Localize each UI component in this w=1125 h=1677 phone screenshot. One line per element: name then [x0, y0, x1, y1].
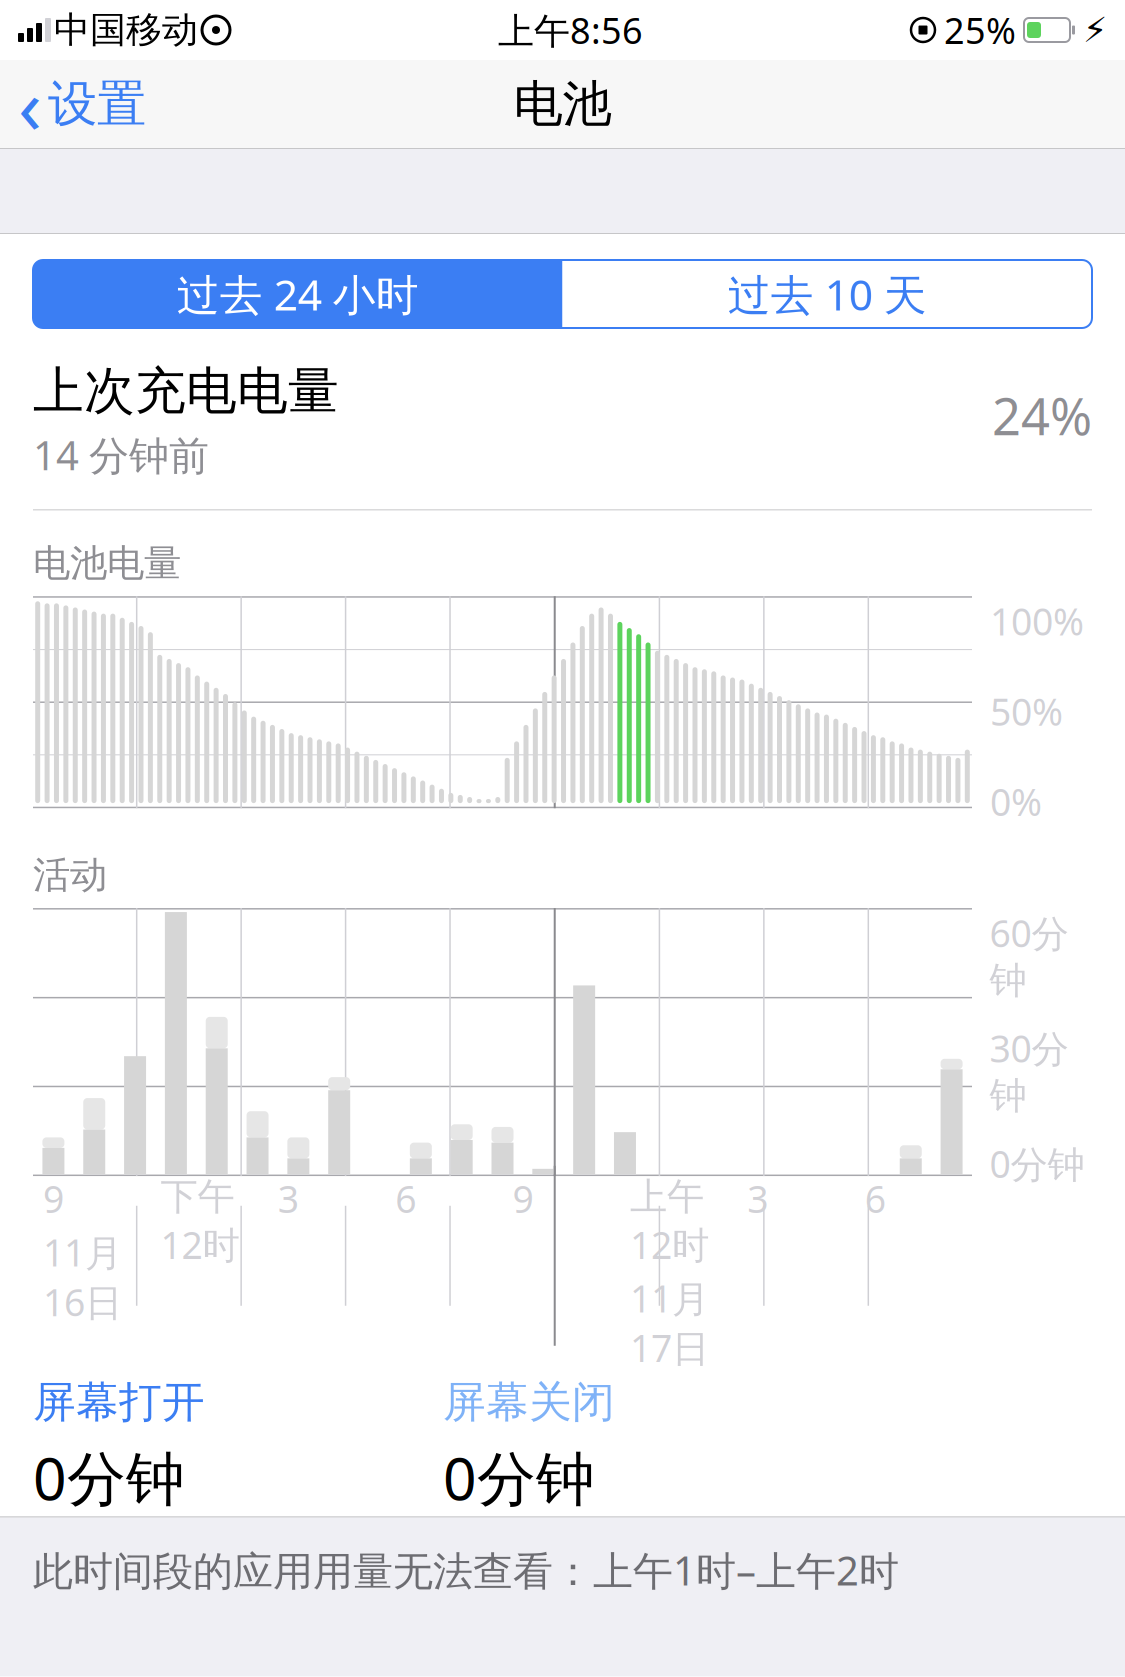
staticText: 过去 24 小时 — [177, 266, 419, 322]
staticText: 0分钟 — [989, 1139, 1084, 1188]
staticText: 设置 — [48, 74, 146, 134]
staticText: 上午 12时 — [630, 1174, 709, 1269]
staticText: 11月17日 — [630, 1273, 709, 1372]
staticText: 0% — [990, 777, 1042, 826]
staticText: 此时间段的应用用量无法查看：上午1时–上午2时 — [33, 1543, 899, 1596]
staticText: 50% — [990, 686, 1063, 736]
staticText: 中国移动 — [54, 8, 198, 52]
staticText: 3 — [747, 1174, 768, 1223]
staticText: 6 — [395, 1174, 416, 1223]
staticText: 9 — [512, 1174, 533, 1223]
staticText: 3 — [278, 1174, 299, 1223]
staticText: 电池 — [513, 74, 611, 134]
staticText: 11月16日 — [43, 1227, 122, 1326]
staticText: 24% — [992, 382, 1092, 449]
staticText: ⚡︎ — [1083, 10, 1107, 50]
staticText: 30分钟 — [989, 1023, 1068, 1119]
staticText: 100% — [990, 596, 1084, 646]
button[interactable]: 过去 10 天 — [562, 260, 1092, 328]
staticText: ‹ — [18, 53, 42, 155]
staticText: 屏幕打开 — [33, 1376, 205, 1428]
staticText: 9 — [43, 1174, 64, 1223]
staticText: 电池电量 — [33, 540, 181, 586]
staticText: 6 — [865, 1174, 886, 1223]
staticText: 活动 — [33, 852, 107, 898]
staticText: 25% — [944, 6, 1016, 54]
staticText: 上次充电电量 — [33, 360, 339, 422]
staticText: 14 分钟前 — [33, 428, 209, 481]
staticText: 60分钟 — [989, 908, 1068, 1003]
staticText: 0分钟 — [33, 1438, 185, 1516]
staticText: 0分钟 — [443, 1438, 595, 1516]
staticText: 过去 10 天 — [728, 266, 927, 322]
button[interactable]: 过去 24 小时 — [33, 260, 562, 328]
staticText: 下午 12时 — [160, 1174, 239, 1269]
button[interactable]: ‹ — [0, 60, 164, 148]
staticText: 上午8:56 — [498, 6, 643, 54]
staticText: 屏幕关闭 — [443, 1376, 615, 1428]
